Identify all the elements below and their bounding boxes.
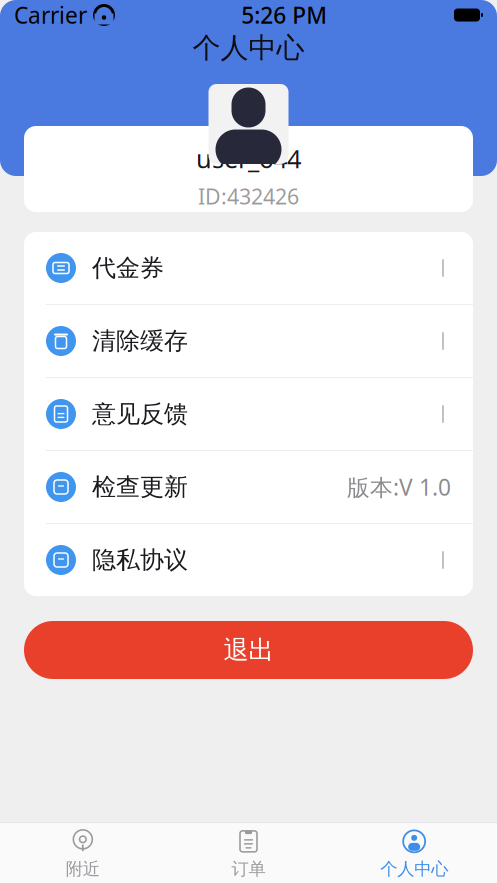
button[interactable]: 意见反馈	[24, 378, 473, 450]
staticText: 检查更新	[92, 472, 188, 502]
staticText: Carrier	[14, 0, 87, 30]
staticText: user_644	[196, 141, 301, 175]
staticText: 订单	[231, 858, 265, 880]
staticText: 隐私协议	[92, 545, 188, 575]
staticText: 5:26 PM	[241, 0, 327, 30]
button[interactable]: 清除缓存	[24, 305, 473, 377]
button[interactable]: 个人中心	[331, 823, 497, 883]
staticText: 附近	[66, 858, 100, 880]
staticText: 版本:V 1.0	[347, 472, 451, 502]
button[interactable]: 附近	[0, 823, 166, 883]
staticText: 退出	[223, 634, 273, 665]
button[interactable]: 代金券	[24, 232, 473, 304]
staticText: ID:432426	[198, 182, 299, 210]
staticText: 个人中心	[192, 31, 304, 65]
button[interactable]: 检查更新	[24, 451, 473, 523]
staticText: 代金券	[92, 253, 164, 283]
button[interactable]: 订单	[166, 823, 331, 883]
staticText: 清除缓存	[92, 326, 188, 356]
staticText: 意见反馈	[92, 399, 188, 429]
staticText: 个人中心	[380, 858, 448, 880]
button[interactable]: 隐私协议	[24, 524, 473, 596]
button[interactable]: 退出	[24, 621, 473, 679]
